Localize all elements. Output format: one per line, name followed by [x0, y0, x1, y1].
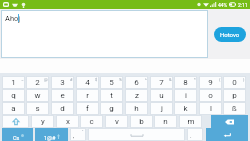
- button[interactable]: Backspace: [211, 115, 248, 128]
- staticText: ): [243, 77, 245, 82]
- staticText: ,: [73, 132, 75, 139]
- button[interactable]: 7: [150, 76, 173, 89]
- button[interactable]: Ahoj: [1, 10, 208, 58]
- button[interactable]: 2: [26, 76, 49, 89]
- button[interactable]: 8: [174, 76, 197, 89]
- staticText: 2: [35, 78, 40, 87]
- staticText: ~: [21, 77, 24, 82]
- staticText: j: [161, 104, 163, 113]
- staticText: q: [11, 91, 16, 100]
- button[interactable]: g: [100, 102, 123, 115]
- staticText: ß: [232, 104, 237, 113]
- button[interactable]: 5: [100, 76, 123, 89]
- button[interactable]: y: [31, 115, 54, 128]
- button[interactable]: 3: [51, 76, 74, 89]
- staticText: 44%: [218, 2, 228, 8]
- staticText: 6: [134, 78, 139, 87]
- staticText: h: [134, 104, 139, 113]
- staticText: v: [115, 117, 119, 126]
- button[interactable]: ,: [70, 128, 86, 141]
- staticText: 9: [208, 78, 213, 87]
- button[interactable]: 4: [76, 76, 99, 89]
- staticText: b: [139, 117, 144, 126]
- staticText: %: [119, 77, 122, 82]
- button[interactable]: j: [150, 102, 173, 115]
- staticText: y: [41, 117, 45, 126]
- button[interactable]: Shift: [2, 115, 29, 128]
- staticText: Ahoj: [5, 14, 21, 23]
- staticText: 3: [60, 78, 65, 87]
- button[interactable]: e: [51, 89, 74, 102]
- button[interactable]: ß: [223, 102, 246, 115]
- button[interactable]: t: [100, 89, 123, 102]
- staticText: Cs: [13, 135, 20, 141]
- button[interactable]: Enter: [206, 128, 248, 141]
- staticText: w: [34, 91, 41, 100]
- staticText: m: [187, 117, 195, 126]
- button[interactable]: 6: [125, 76, 148, 89]
- button[interactable]: v: [105, 115, 128, 128]
- button[interactable]: b: [130, 115, 153, 128]
- staticText: i: [185, 91, 187, 100]
- staticText: 8: [183, 78, 188, 87]
- button[interactable]: Space: [88, 128, 185, 141]
- staticText: t: [110, 91, 113, 100]
- button[interactable]: i: [174, 89, 197, 102]
- staticText: #: [70, 77, 73, 82]
- staticText: a: [11, 104, 16, 113]
- staticText: p: [232, 91, 237, 100]
- button[interactable]: a: [2, 102, 25, 115]
- staticText: f: [86, 104, 89, 113]
- staticText: 4: [85, 78, 90, 87]
- button[interactable]: d: [51, 102, 74, 115]
- button[interactable]: Hotovo: [214, 27, 246, 42]
- staticText: (: [219, 77, 221, 82]
- button[interactable]: f: [76, 102, 99, 115]
- staticText: o: [208, 91, 213, 100]
- staticText: s: [35, 104, 40, 113]
- staticText: r: [86, 91, 89, 100]
- staticText: 7: [159, 78, 164, 87]
- staticText: l: [210, 104, 212, 113]
- button[interactable]: w: [26, 89, 49, 102]
- staticText: .: [190, 132, 192, 139]
- button[interactable]: 0: [223, 76, 246, 89]
- button[interactable]: .: [187, 128, 203, 141]
- staticText: n: [163, 117, 168, 126]
- staticText: z: [135, 91, 139, 100]
- staticText: 1@#: [44, 135, 56, 141]
- staticText: ": [82, 129, 84, 134]
- button[interactable]: q: [2, 89, 25, 102]
- button[interactable]: Language: [2, 128, 33, 141]
- button[interactable]: r: [76, 89, 99, 102]
- button[interactable]: h: [125, 102, 148, 115]
- staticText: Hotovo: [220, 31, 240, 38]
- staticText: x: [66, 117, 70, 126]
- button[interactable]: m: [179, 115, 202, 128]
- staticText: 1: [11, 78, 16, 87]
- button[interactable]: n: [154, 115, 177, 128]
- button[interactable]: x: [56, 115, 79, 128]
- staticText: &: [169, 77, 172, 82]
- staticText: 5: [109, 78, 114, 87]
- button[interactable]: Symbols: [35, 128, 68, 141]
- button[interactable]: u: [150, 89, 173, 102]
- staticText: u: [159, 91, 164, 100]
- button[interactable]: 1: [2, 76, 25, 89]
- button[interactable]: z: [125, 89, 148, 102]
- staticText: c: [89, 117, 94, 126]
- button[interactable]: c: [80, 115, 103, 128]
- button[interactable]: s: [26, 102, 49, 115]
- staticText: $: [95, 77, 98, 82]
- staticText: e: [60, 91, 65, 100]
- button[interactable]: k: [174, 102, 197, 115]
- button[interactable]: o: [199, 89, 222, 102]
- button[interactable]: p: [223, 89, 246, 102]
- button[interactable]: 9: [199, 76, 222, 89]
- staticText: ^: [145, 77, 147, 82]
- staticText: g: [109, 104, 114, 113]
- staticText: @: [44, 77, 48, 82]
- button[interactable]: l: [199, 102, 222, 115]
- staticText: 0: [232, 78, 237, 87]
- staticText: 2:11: [238, 2, 248, 8]
